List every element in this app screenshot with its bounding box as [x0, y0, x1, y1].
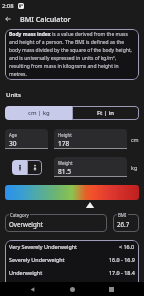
staticText: cm | kg — [28, 109, 50, 117]
button[interactable]: Back — [0, 12, 16, 26]
staticText: 178 — [58, 139, 70, 148]
button[interactable]: Female — [27, 160, 42, 175]
staticText: 30 — [9, 139, 17, 148]
staticText: Ft | in — [97, 109, 114, 117]
staticText: Body mass index is a value derived from … — [9, 31, 136, 78]
button[interactable]: Very Severely Underweight — [5, 240, 139, 253]
staticText: Age — [9, 132, 17, 138]
button[interactable]: Recent apps — [104, 282, 118, 296]
button[interactable] — [5, 214, 107, 232]
staticText: Units — [6, 91, 22, 99]
staticText: Underweight — [9, 269, 43, 276]
staticText: < 16.0 — [119, 243, 135, 250]
button[interactable]: Severely Underweight — [5, 253, 139, 266]
button[interactable]: Weight — [54, 157, 127, 177]
staticText: 26.7 — [117, 220, 130, 228]
staticText: Severely Underweight — [9, 256, 65, 263]
staticText: BMI — [118, 212, 127, 218]
button[interactable] — [113, 214, 139, 232]
staticText: 18.5 - 24.9 — [109, 282, 135, 289]
staticText: 16.0 - 16.9 — [109, 256, 135, 263]
staticText: 81.5 — [58, 167, 72, 176]
button[interactable]: Underweight — [5, 266, 139, 279]
staticText: cm — [131, 136, 139, 143]
staticText: Category — [10, 212, 29, 218]
staticText: 2:08 — [2, 2, 14, 10]
staticText: Very Severely Underweight — [9, 243, 78, 250]
button[interactable]: Normal — [5, 279, 139, 292]
button[interactable]: Age — [5, 129, 48, 149]
staticText: BMI Calculator — [20, 14, 71, 24]
button[interactable]: Back — [25, 282, 39, 296]
button[interactable]: Male — [12, 160, 27, 175]
staticText: 17.0 - 18.4 — [109, 269, 135, 276]
staticText: Weight — [58, 160, 73, 166]
button[interactable]: cm | kg — [5, 106, 72, 120]
staticText: kg — [131, 164, 138, 171]
staticText: Height — [58, 132, 72, 138]
staticText: Overweight — [9, 220, 43, 228]
button[interactable]: Home — [65, 282, 79, 296]
button[interactable]: Height — [54, 129, 127, 149]
button[interactable]: Ft | in — [72, 106, 139, 120]
